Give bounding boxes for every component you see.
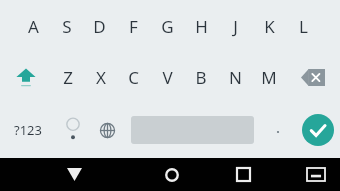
button[interactable]: L: [286, 0, 320, 52]
button[interactable]: D: [83, 0, 116, 52]
button[interactable]: Home: [148, 158, 195, 191]
staticText: J: [233, 15, 238, 38]
button[interactable]: A: [17, 0, 50, 52]
button[interactable]: Change language: [89, 102, 125, 158]
button[interactable]: Hide keyboard: [291, 158, 340, 191]
staticText: L: [299, 15, 308, 38]
button[interactable]: C: [117, 52, 150, 102]
button[interactable]: J: [218, 0, 252, 52]
staticText: S: [62, 15, 72, 38]
staticText: M: [261, 66, 277, 89]
button[interactable]: [260, 102, 296, 158]
button[interactable]: Back: [0, 158, 148, 191]
staticText: A: [28, 15, 39, 38]
button[interactable]: Emoji: [56, 102, 89, 158]
button[interactable]: N: [218, 52, 252, 102]
staticText: H: [195, 15, 208, 38]
staticText: C: [128, 66, 139, 89]
button[interactable]: B: [184, 52, 218, 102]
button[interactable]: Z: [51, 52, 84, 102]
staticText: B: [195, 66, 207, 89]
staticText: D: [93, 15, 106, 38]
button[interactable]: G: [150, 0, 184, 52]
button[interactable]: Shift: [0, 52, 51, 102]
button[interactable]: K: [252, 0, 286, 52]
button[interactable]: Enter: [296, 102, 340, 158]
button[interactable]: X: [84, 52, 117, 102]
button[interactable]: M: [252, 52, 286, 102]
staticText: V: [162, 66, 173, 89]
button[interactable]: H: [184, 0, 218, 52]
button[interactable]: Recent apps: [195, 158, 291, 191]
button[interactable]: ?123: [0, 102, 56, 158]
staticText: X: [96, 66, 106, 89]
staticText: G: [161, 15, 174, 38]
button[interactable]: F: [116, 0, 150, 52]
button[interactable]: V: [150, 52, 184, 102]
staticText: ?123: [14, 121, 42, 139]
staticText: K: [264, 15, 275, 38]
staticText: F: [129, 15, 138, 38]
staticText: N: [229, 66, 242, 89]
button[interactable]: S: [50, 0, 83, 52]
staticText: Z: [63, 66, 73, 89]
button[interactable]: Backspace: [286, 52, 340, 102]
